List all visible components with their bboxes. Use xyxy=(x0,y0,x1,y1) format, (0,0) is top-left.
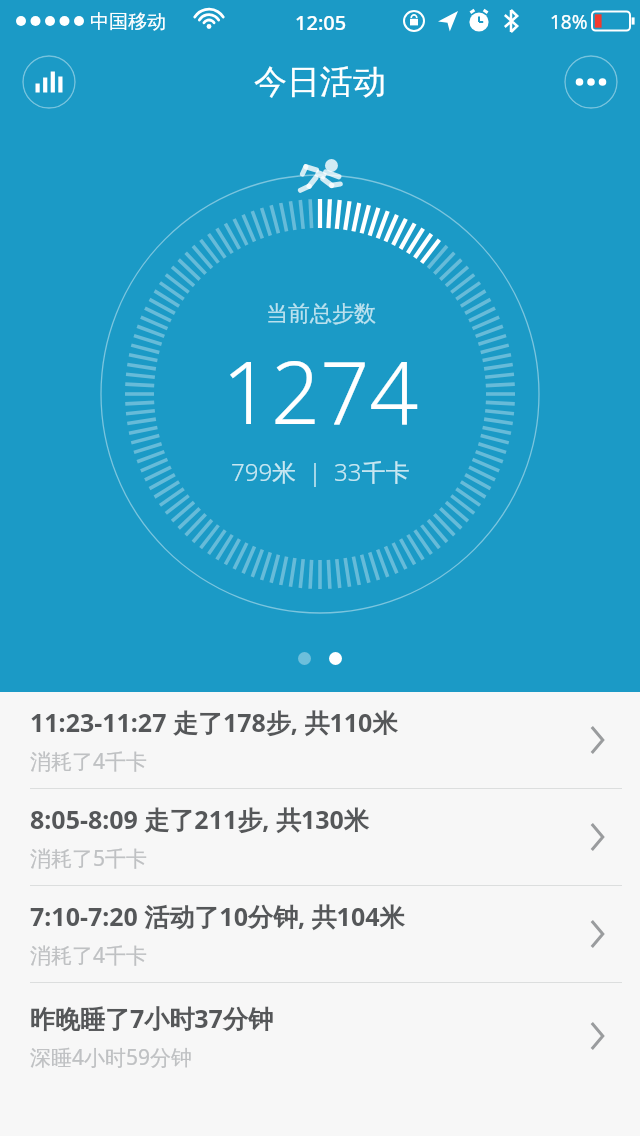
staticText: 消耗了4千卡 xyxy=(30,941,148,970)
button[interactable]: 更多 xyxy=(564,55,618,109)
button[interactable]: 8:05-8:09 走了211步, 共130米 xyxy=(0,789,640,886)
staticText: 11:23-11:27 走了178步, 共110米 xyxy=(30,705,398,739)
staticText: 当前总步数 xyxy=(266,300,376,328)
button[interactable]: 活动统计 xyxy=(22,55,76,109)
staticText: 18% xyxy=(550,9,588,35)
button[interactable]: 7:10-7:20 活动了10分钟, 共104米 xyxy=(0,886,640,983)
button[interactable]: 11:23-11:27 走了178步, 共110米 xyxy=(0,692,640,789)
staticText: 7:10-7:20 活动了10分钟, 共104米 xyxy=(30,899,405,933)
button[interactable]: 昨晚睡了7小时37分钟 xyxy=(0,983,640,1089)
staticText: 799米 | 33千卡 xyxy=(231,455,410,488)
staticText: 中国移动 xyxy=(90,10,166,34)
staticText: 消耗了4千卡 xyxy=(30,747,148,776)
staticText: 消耗了5千卡 xyxy=(30,844,148,873)
staticText: 昨晚睡了7小时37分钟 xyxy=(30,1001,273,1035)
button[interactable]: 第 2 页 xyxy=(329,652,342,665)
staticText: 深睡4小时59分钟 xyxy=(30,1043,193,1072)
staticText: 1274 xyxy=(222,332,419,449)
staticText: 12:05 xyxy=(295,9,347,36)
staticText: 今日活动 xyxy=(254,61,386,103)
staticText: 8:05-8:09 走了211步, 共130米 xyxy=(30,802,369,836)
button[interactable]: 第 1 页 xyxy=(298,652,311,665)
